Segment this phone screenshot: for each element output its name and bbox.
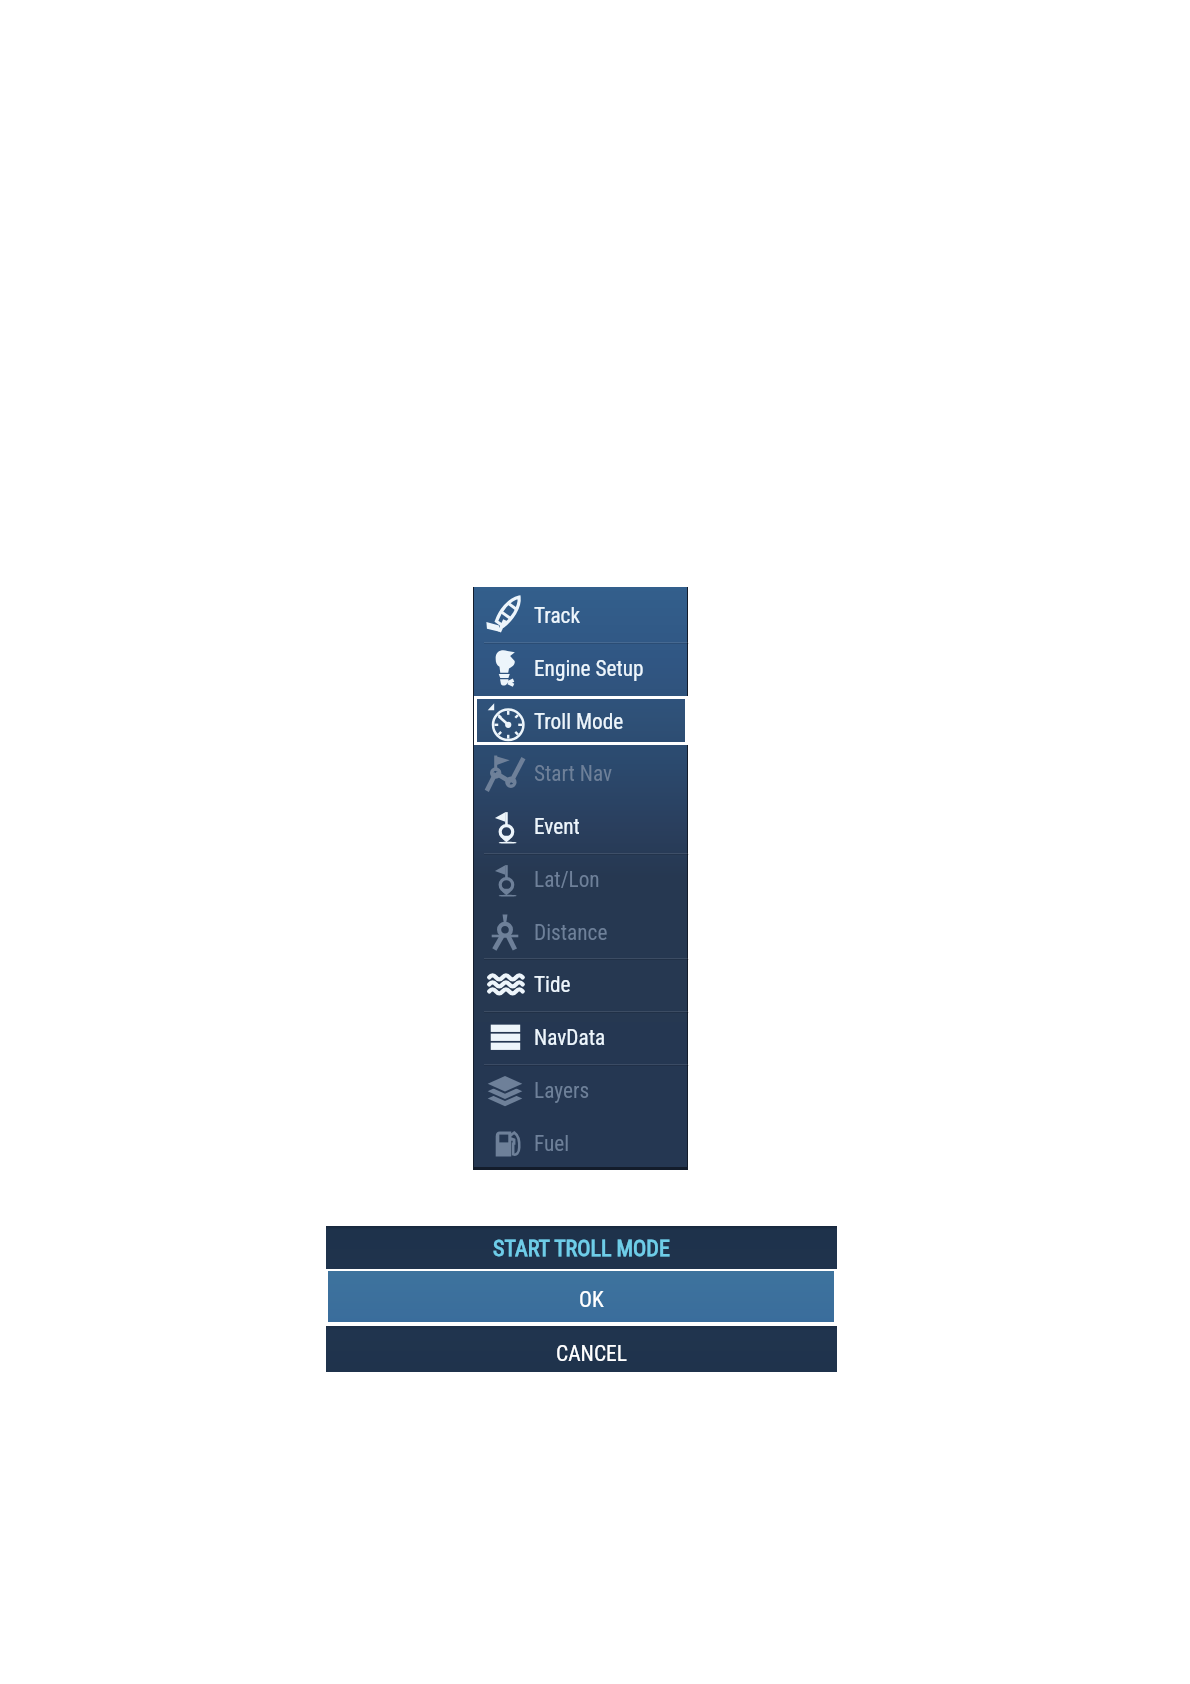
staticText: Lat/Lon — [534, 867, 600, 892]
staticText: Event — [534, 814, 580, 839]
other: Start Nav — [486, 754, 524, 792]
button[interactable]: Track — [474, 587, 687, 640]
button[interactable]: OK — [328, 1271, 834, 1322]
staticText: Start Nav — [534, 761, 613, 786]
other: Fuel — [486, 1124, 524, 1162]
button[interactable]: Layers — [474, 1062, 687, 1115]
staticText: NavData — [534, 1025, 606, 1050]
staticText: CANCEL — [556, 1341, 628, 1366]
staticText: Layers — [534, 1078, 590, 1103]
button[interactable]: Start Nav — [474, 745, 687, 798]
button[interactable]: Distance — [474, 904, 687, 957]
button[interactable]: Troll Mode — [474, 693, 687, 746]
other: Distance — [486, 913, 524, 951]
button[interactable]: NavData — [474, 1009, 687, 1062]
staticText: Tide — [534, 972, 571, 997]
button[interactable]: Event — [474, 798, 687, 851]
other: Event — [486, 807, 524, 845]
button[interactable]: Lat/Lon — [474, 851, 687, 904]
button[interactable]: START TROLL MODE — [326, 1226, 837, 1269]
button[interactable]: Tide — [474, 956, 687, 1009]
staticText: START TROLL MODE — [493, 1236, 670, 1262]
staticText: Engine Setup — [534, 656, 644, 681]
other: Lat/Lon — [486, 860, 524, 898]
button[interactable]: CANCEL — [326, 1326, 837, 1372]
staticText: Fuel — [534, 1131, 570, 1156]
other: Track — [486, 596, 524, 634]
other: Troll Mode — [486, 702, 524, 740]
other: Engine Setup — [486, 649, 524, 687]
staticText: Troll Mode — [534, 709, 624, 734]
button[interactable]: Fuel — [474, 1115, 687, 1168]
other: NavData — [486, 1018, 524, 1056]
other: Layers — [486, 1071, 524, 1109]
staticText: OK — [579, 1287, 604, 1312]
button[interactable]: Engine Setup — [474, 640, 687, 693]
other: Tide — [486, 965, 524, 1003]
staticText: Track — [534, 603, 581, 628]
staticText: Distance — [534, 920, 608, 945]
